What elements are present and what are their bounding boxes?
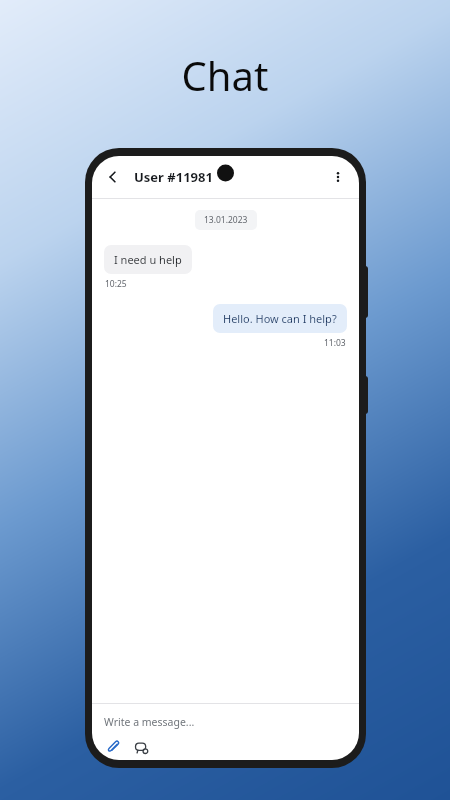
staticText: 10:25 (105, 278, 127, 290)
staticText: Chat (0, 48, 450, 102)
button[interactable]: 13.01.2023 (195, 210, 257, 230)
button[interactable]: I need u help (104, 245, 192, 274)
staticText: Write a message... (104, 715, 195, 729)
staticText: Hello. How can I help? (223, 311, 337, 326)
button[interactable]: Back (100, 164, 126, 190)
button[interactable]: Attach file (104, 738, 122, 756)
button[interactable]: More options (325, 164, 351, 190)
button[interactable]: Stickers (132, 738, 150, 756)
button[interactable]: Hello. How can I help? (213, 304, 347, 333)
staticText: I need u help (114, 252, 182, 267)
staticText: 11:03 (324, 337, 346, 349)
staticText: User #11981 (134, 168, 213, 186)
button[interactable]: Write a message... (104, 715, 347, 729)
staticText: 13.01.2023 (204, 214, 248, 226)
